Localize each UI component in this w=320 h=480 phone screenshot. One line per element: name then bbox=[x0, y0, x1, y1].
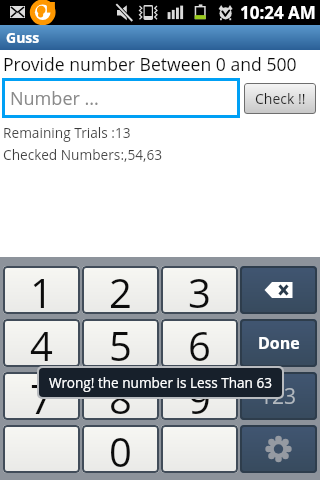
staticText: 9 bbox=[188, 372, 211, 419]
staticText: 4 bbox=[30, 319, 53, 366]
staticText: 3 bbox=[188, 266, 211, 313]
button[interactable]: 1 bbox=[3, 266, 80, 314]
button[interactable]: Settings bbox=[240, 425, 317, 473]
staticText: 7 bbox=[30, 372, 53, 419]
staticText: 8 bbox=[109, 372, 132, 419]
button[interactable]: 4 bbox=[3, 319, 80, 367]
button[interactable]: 7 bbox=[3, 372, 80, 420]
button[interactable]: 2 bbox=[82, 266, 159, 314]
button[interactable]: Done bbox=[240, 319, 317, 367]
staticText: Number ... bbox=[10, 86, 99, 111]
button[interactable] bbox=[3, 425, 80, 473]
button[interactable]: 9 bbox=[161, 372, 238, 420]
button[interactable]: 3 bbox=[161, 266, 238, 314]
staticText: Guss bbox=[6, 28, 40, 47]
button[interactable]: Number ... bbox=[2, 78, 240, 118]
staticText: Provide number Between 0 and 500 bbox=[3, 52, 297, 76]
staticText: 10:24 AM bbox=[240, 1, 316, 24]
staticText: Done bbox=[258, 332, 300, 354]
button[interactable]: Backspace bbox=[240, 266, 317, 314]
button[interactable]: 8 bbox=[82, 372, 159, 420]
button[interactable]: Check !! bbox=[244, 83, 316, 114]
staticText: Remaining Trials :13 bbox=[3, 123, 131, 142]
button[interactable]: 6 bbox=[161, 319, 238, 367]
staticText: Checked Numbers:,54,63 bbox=[3, 145, 163, 164]
staticText: 2 bbox=[109, 266, 132, 313]
staticText: 5 bbox=[109, 319, 132, 366]
staticText: 0 bbox=[109, 425, 132, 472]
button[interactable]: Symbols bbox=[240, 372, 317, 420]
staticText: Wrong! the number is Less Than 63 bbox=[49, 373, 273, 392]
staticText: 1 bbox=[30, 266, 53, 313]
button[interactable]: 5 bbox=[82, 319, 159, 367]
button[interactable] bbox=[161, 425, 238, 473]
staticText: 123 bbox=[260, 382, 297, 411]
button[interactable]: 0 bbox=[82, 425, 159, 473]
staticText: 6 bbox=[188, 319, 211, 366]
staticText: Check !! bbox=[255, 89, 306, 108]
